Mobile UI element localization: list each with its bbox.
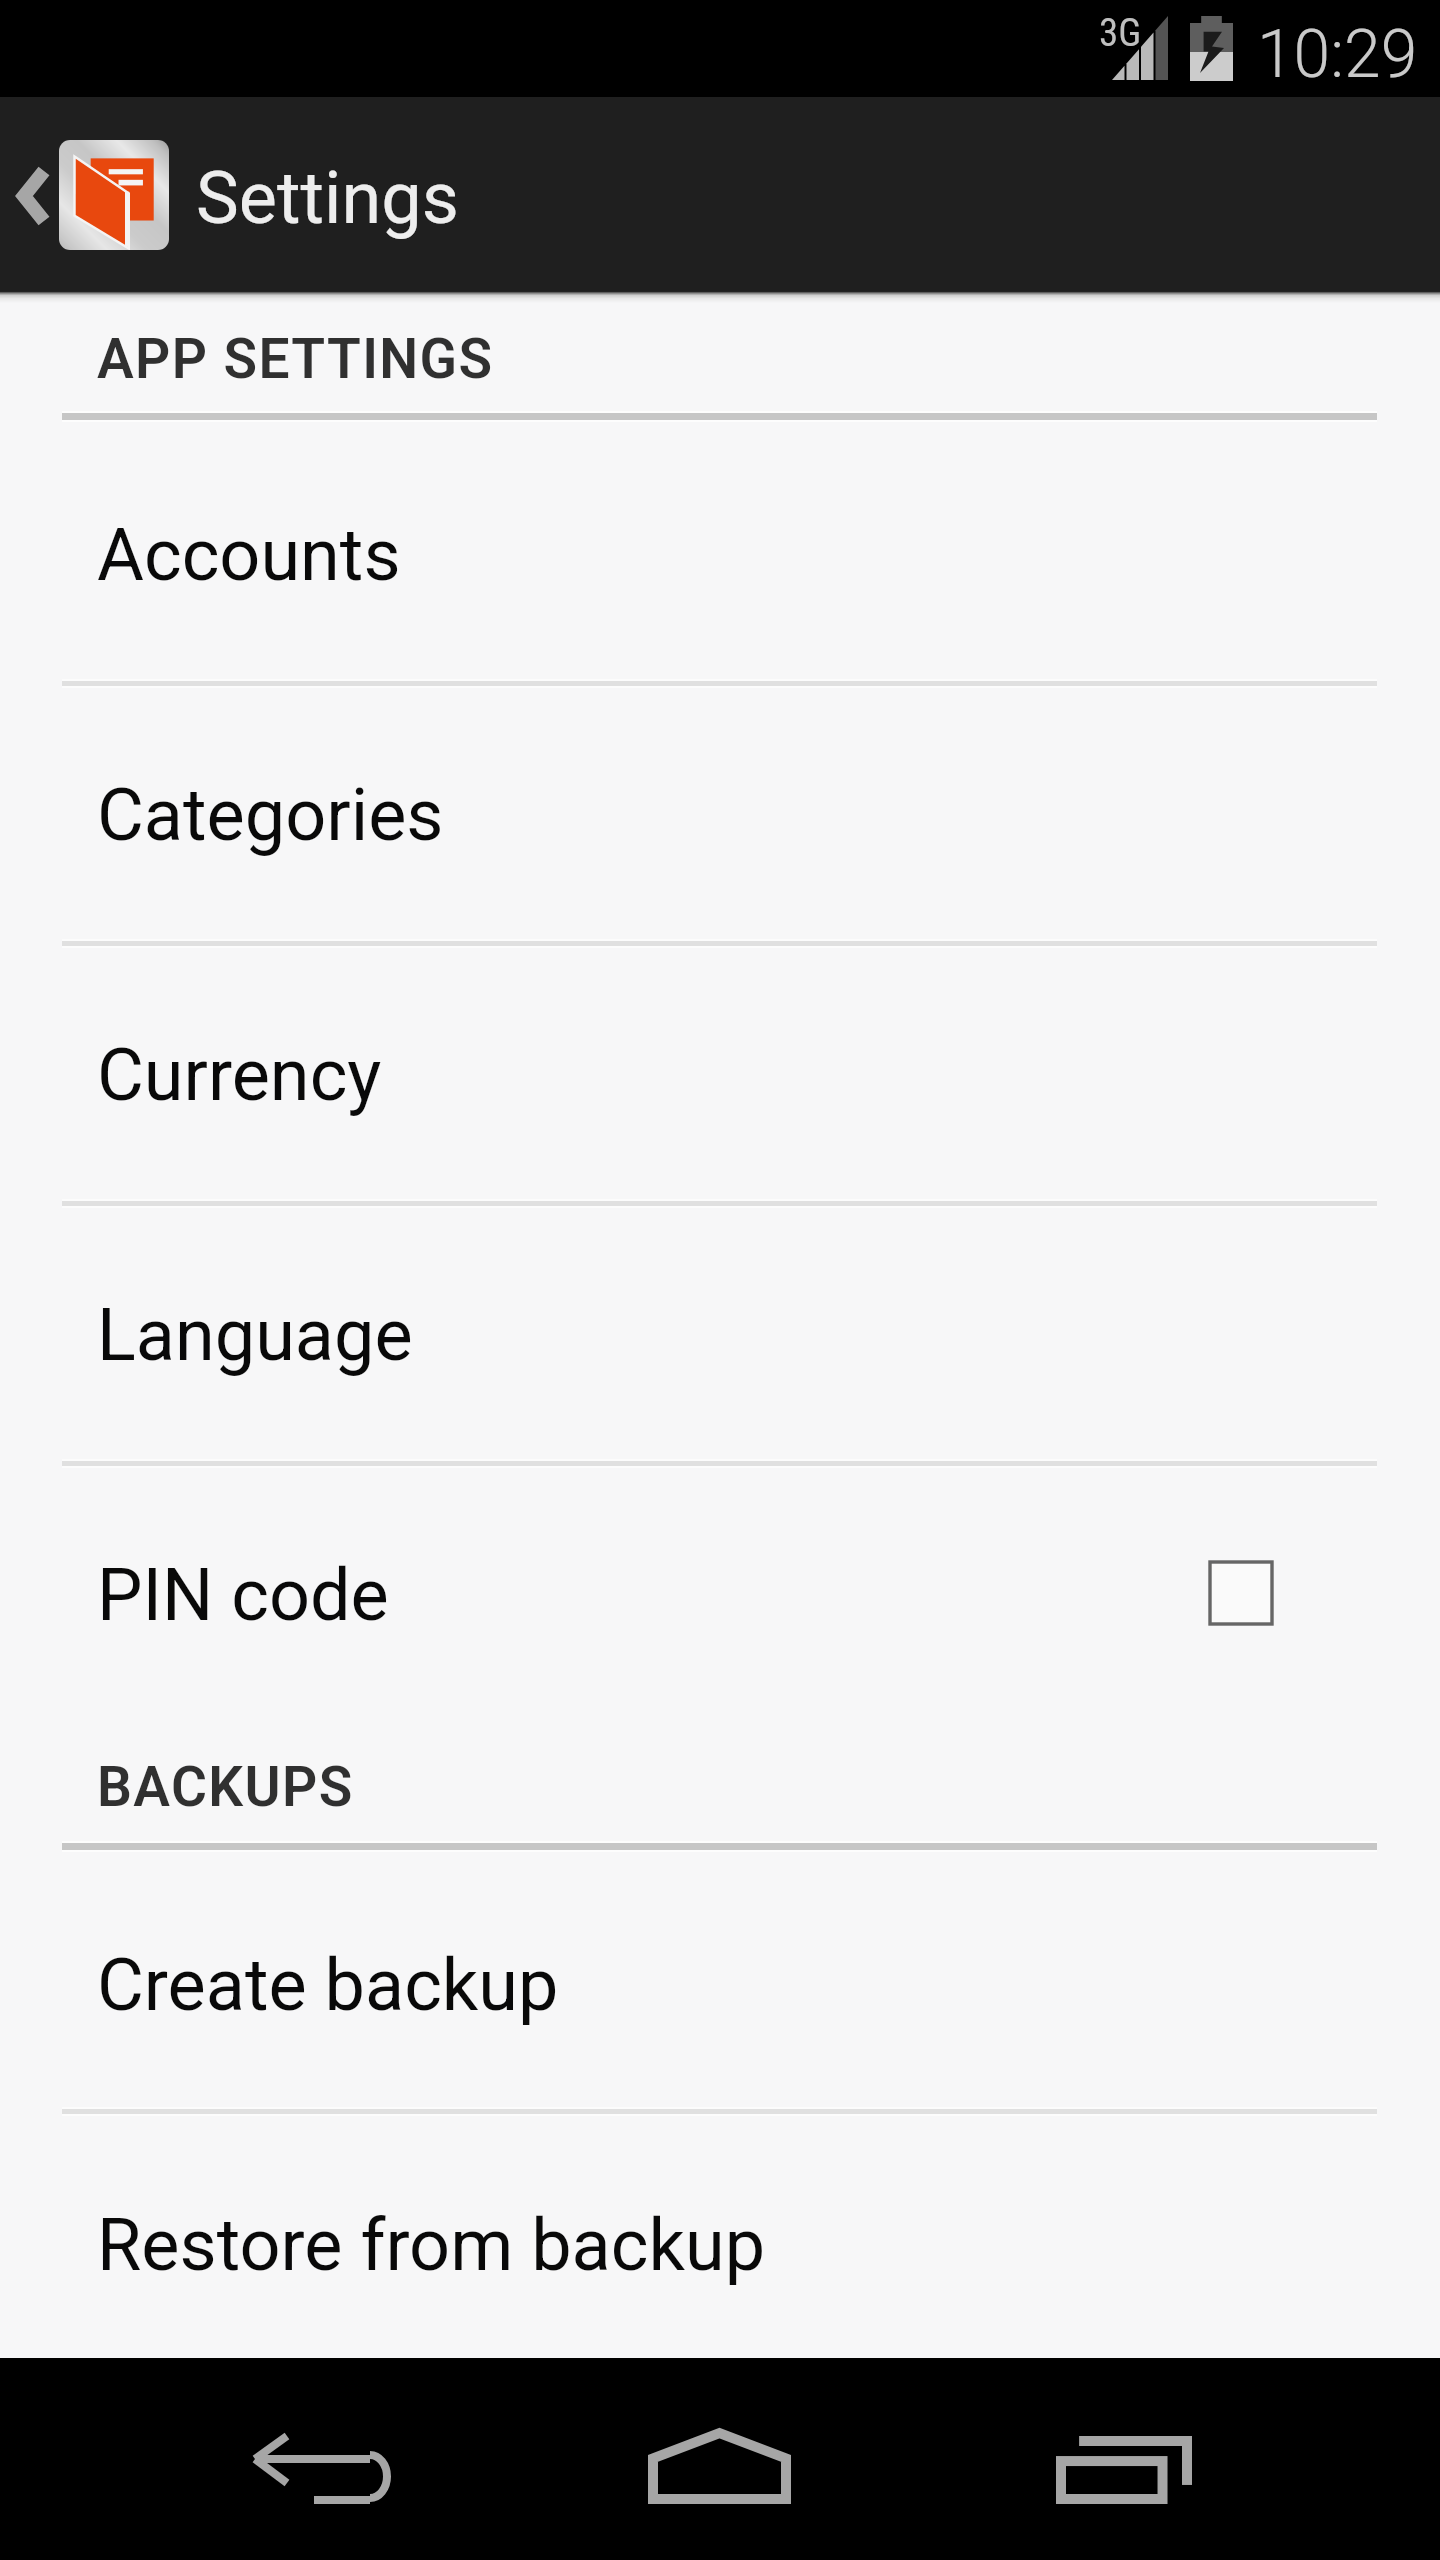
- staticText: Currency: [97, 1033, 382, 1117]
- staticText: PIN code: [97, 1553, 389, 1637]
- staticText: Language: [97, 1293, 413, 1377]
- staticText: Create backup: [97, 1943, 559, 2027]
- staticText: 3G: [1099, 10, 1142, 56]
- staticText: Accounts: [97, 513, 401, 597]
- staticText: Settings: [196, 156, 459, 240]
- button[interactable]: Language: [0, 1204, 1440, 1460]
- button[interactable]: Toggle PIN code: [1210, 1562, 1272, 1624]
- staticText: Categories: [97, 773, 444, 857]
- button[interactable]: PIN code: [0, 1464, 1440, 1720]
- staticText: BACKUPS: [97, 1755, 354, 1819]
- staticText: Restore from backup: [97, 2203, 766, 2287]
- button[interactable]: Currency: [0, 944, 1440, 1200]
- button[interactable]: Restore from backup: [0, 2112, 1440, 2358]
- button[interactable]: Categories: [0, 684, 1440, 940]
- button[interactable]: Recent apps: [960, 2358, 1280, 2560]
- button[interactable]: Accounts: [0, 421, 1440, 680]
- button[interactable]: Navigate up: [0, 97, 186, 291]
- button[interactable]: Create backup: [0, 1851, 1440, 2108]
- button[interactable]: Home: [560, 2358, 880, 2560]
- staticText: APP SETTINGS: [97, 327, 494, 391]
- staticText: 10:29: [1257, 16, 1418, 93]
- button[interactable]: Back: [160, 2358, 480, 2560]
